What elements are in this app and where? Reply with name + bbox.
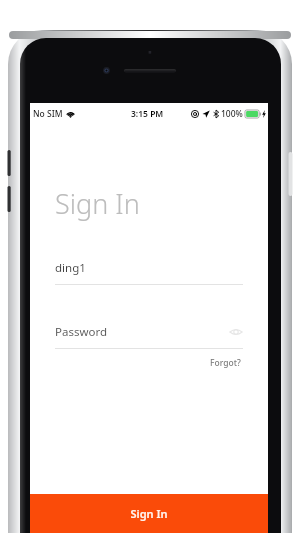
button[interactable]: Forgot? xyxy=(208,355,243,371)
button[interactable]: Sign In xyxy=(30,494,268,533)
staticText: 3:15 PM xyxy=(131,108,164,120)
button[interactable]: ding1 xyxy=(55,260,243,285)
button[interactable]: Password xyxy=(55,324,243,340)
button[interactable]: Show password xyxy=(229,327,243,337)
staticText: ding1 xyxy=(55,260,86,276)
staticText: No SIM xyxy=(33,108,63,120)
staticText: Password xyxy=(55,324,108,340)
staticText: 100% xyxy=(221,108,243,120)
staticText: Sign In xyxy=(55,185,140,222)
staticText: Sign In xyxy=(130,506,168,521)
